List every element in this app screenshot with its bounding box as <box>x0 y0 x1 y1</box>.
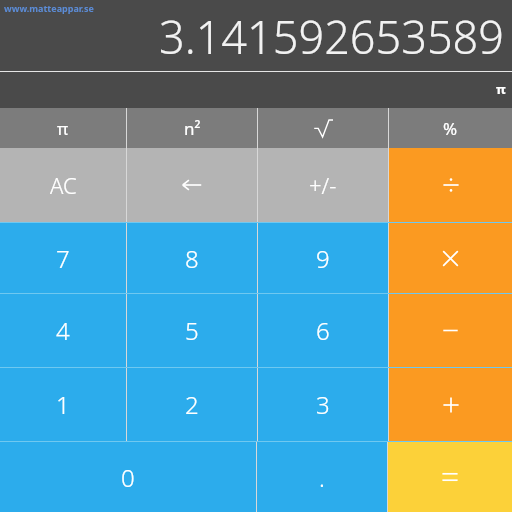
button[interactable]: π <box>0 108 126 148</box>
staticText: 3 <box>316 388 330 421</box>
staticText: 9 <box>316 242 330 275</box>
button[interactable]: n² <box>127 108 257 148</box>
staticText: 7 <box>56 242 70 275</box>
staticText: 1 <box>56 388 70 421</box>
button[interactable]: Square root <box>258 108 388 148</box>
staticText: 5 <box>185 314 199 347</box>
staticText: AC <box>50 170 77 200</box>
button[interactable]: 9 <box>258 223 388 293</box>
staticText: % <box>443 117 458 140</box>
button[interactable]: Equals <box>388 442 512 512</box>
button[interactable]: 2 <box>127 368 257 441</box>
button[interactable]: Multiply <box>389 223 512 293</box>
staticText: π <box>496 80 506 98</box>
staticText: n² <box>184 117 201 140</box>
button[interactable]: 6 <box>258 294 388 367</box>
button[interactable]: % <box>389 108 512 148</box>
button[interactable]: AC <box>0 148 126 222</box>
button[interactable]: 5 <box>127 294 257 367</box>
staticText: 4 <box>56 314 70 347</box>
staticText: 8 <box>185 242 199 275</box>
button[interactable]: 1 <box>0 368 126 441</box>
staticText: 6 <box>316 314 330 347</box>
button[interactable]: 4 <box>0 294 126 367</box>
button[interactable]: Plus <box>389 368 512 441</box>
button[interactable]: 8 <box>127 223 257 293</box>
staticText: +/- <box>309 170 337 200</box>
staticText: 2 <box>185 388 199 421</box>
button[interactable]: 7 <box>0 223 126 293</box>
button[interactable]: 3 <box>258 368 388 441</box>
button[interactable]: . <box>257 442 387 512</box>
button[interactable]: Backspace <box>127 148 257 222</box>
button[interactable]: Minus <box>389 294 512 367</box>
button[interactable]: Divide <box>389 148 512 222</box>
button[interactable]: 0 <box>0 442 256 512</box>
button[interactable]: +/- <box>258 148 388 222</box>
staticText: π <box>57 117 69 140</box>
staticText: . <box>319 461 325 494</box>
staticText: 3.141592653589 <box>158 6 504 67</box>
staticText: 0 <box>121 461 135 494</box>
staticText: www.matteappar.se <box>4 2 94 14</box>
